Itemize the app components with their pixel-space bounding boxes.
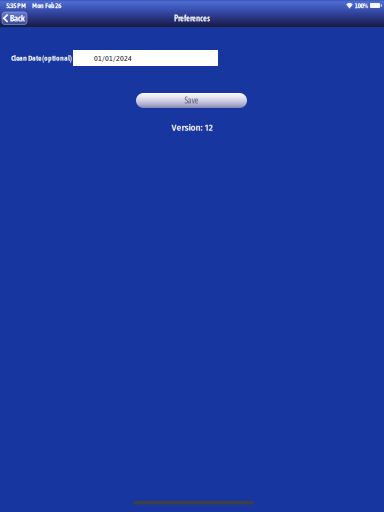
staticText: Save xyxy=(184,96,198,105)
staticText: Clean Date (optional) xyxy=(11,54,72,62)
staticText: Back xyxy=(10,13,25,23)
button[interactable]: Back xyxy=(2,12,27,24)
staticText: Preferences xyxy=(174,14,210,23)
staticText: Mon Feb 26 xyxy=(32,1,61,10)
button[interactable]: Save xyxy=(136,93,247,108)
staticText: 5:35 PM xyxy=(6,1,26,10)
button[interactable]: Clean Date xyxy=(73,50,218,66)
staticText: 01/01/2024 xyxy=(94,53,132,63)
staticText: Version: 12 xyxy=(171,123,212,133)
staticText: 100% xyxy=(354,1,368,10)
